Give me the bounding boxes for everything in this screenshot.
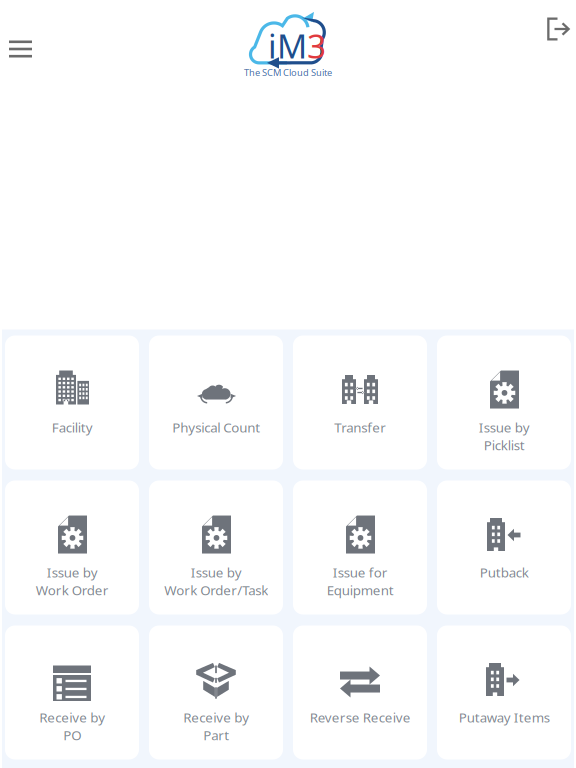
button[interactable]: Menu [0, 0, 50, 75]
button[interactable]: Issue by Work Order/Task [149, 480, 283, 614]
button[interactable]: Issue by Work Order [5, 480, 139, 614]
button[interactable]: Issue for Equipment [293, 480, 427, 614]
staticText: Physical Count [172, 418, 260, 436]
staticText: Issue by Picklist [478, 418, 529, 454]
button[interactable]: Issue by Picklist [437, 335, 571, 469]
staticText: Reverse Receive [309, 708, 410, 726]
staticText: Transfer [334, 418, 386, 436]
button[interactable]: Transfer [293, 335, 427, 469]
button[interactable]: Receive by Part [149, 625, 283, 759]
button[interactable]: Physical Count [149, 335, 283, 469]
staticText: Issue by Work Order/Task [164, 563, 268, 599]
button[interactable]: Putaway Items [437, 625, 571, 759]
button[interactable]: Putback [437, 480, 571, 614]
staticText: Issue by Work Order [35, 563, 108, 599]
staticText: Putaway Items [458, 708, 549, 726]
staticText: 3 [307, 23, 326, 68]
staticText: Receive by PO [39, 708, 105, 744]
staticText: Receive by Part [183, 708, 249, 744]
staticText: Facility [51, 418, 92, 436]
button[interactable]: Reverse Receive [293, 625, 427, 759]
button[interactable]: Receive by PO [5, 625, 139, 759]
staticText: Issue for Equipment [326, 563, 393, 599]
staticText: iM [268, 23, 307, 68]
staticText: The SCM Cloud Suite [244, 66, 332, 79]
button[interactable]: Facility [5, 335, 139, 469]
staticText: Putback [479, 563, 528, 581]
button[interactable]: Log out [529, 0, 576, 58]
